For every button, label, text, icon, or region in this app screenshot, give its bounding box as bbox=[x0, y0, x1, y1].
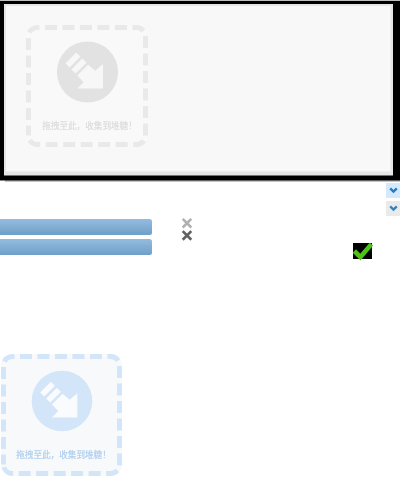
staticText: 拖拽至此，收集到堆糖！ bbox=[16, 448, 111, 460]
button[interactable]: 拖拽至此，收集到堆糖！ bbox=[26, 25, 148, 147]
button[interactable]: Expand bbox=[386, 183, 400, 198]
button[interactable] bbox=[0, 219, 152, 235]
button[interactable]: Close bbox=[181, 229, 193, 241]
button[interactable]: Collapse bbox=[386, 201, 400, 216]
button[interactable] bbox=[0, 239, 152, 255]
button[interactable]: Done bbox=[353, 243, 372, 259]
button[interactable]: 拖拽至此，收集到堆糖！ bbox=[1, 354, 122, 476]
staticText: 拖拽至此，收集到堆糖！ bbox=[42, 119, 137, 131]
button[interactable]: Close bbox=[181, 217, 193, 229]
